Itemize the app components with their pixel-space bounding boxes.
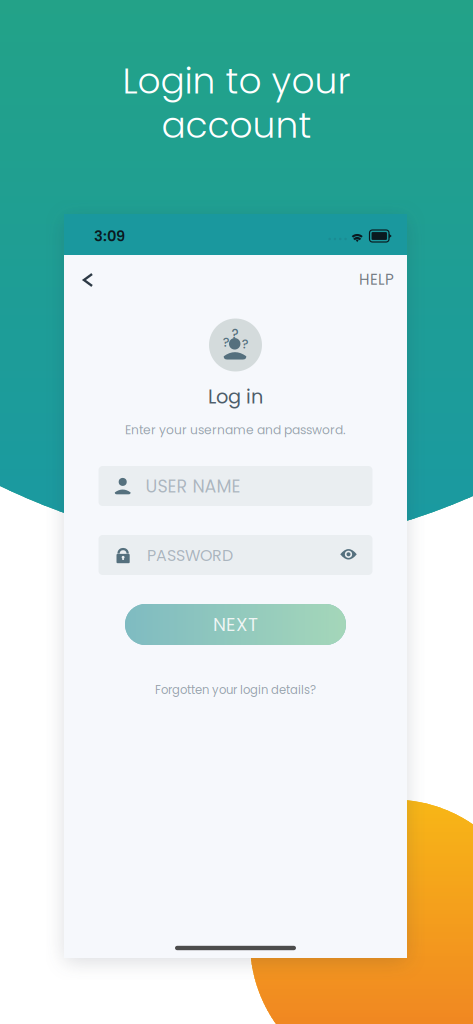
- staticText: Enter your username and password.: [125, 421, 346, 439]
- staticText: account: [161, 100, 311, 150]
- staticText: Login to your: [122, 56, 350, 106]
- staticText: ?: [223, 333, 230, 351]
- button[interactable]: PASSWORD: [98, 535, 372, 575]
- button[interactable]: Back: [68, 260, 108, 300]
- staticText: PASSWORD: [147, 544, 233, 567]
- button[interactable]: Forgotten your login details?: [125, 677, 345, 703]
- staticText: ?: [242, 335, 249, 353]
- staticText: 3:09: [94, 226, 125, 246]
- staticText: USER NAME: [145, 474, 240, 499]
- button[interactable]: USER NAME: [98, 466, 372, 506]
- staticText: Forgotten your login details?: [155, 682, 316, 698]
- staticText: NEXT: [213, 611, 258, 637]
- button[interactable]: NEXT: [125, 604, 346, 645]
- staticText: Log in: [208, 383, 263, 410]
- button[interactable]: Show password: [332, 539, 364, 569]
- staticText: ?: [231, 325, 238, 344]
- staticText: HELP: [359, 269, 394, 290]
- button[interactable]: HELP: [348, 261, 404, 297]
